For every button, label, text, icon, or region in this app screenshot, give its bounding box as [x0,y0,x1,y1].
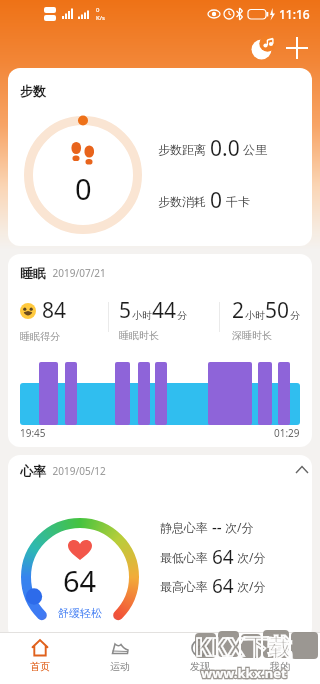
staticText: 小时 [132,309,152,322]
staticText: 44 [152,296,177,325]
staticText: 5 [119,296,132,325]
staticText: 0.0 [210,134,240,163]
staticText: 次/分 [234,549,266,565]
staticText: 睡眠时长 [119,329,159,342]
button[interactable]: 首页 [0,633,80,684]
staticText: 64 [63,561,97,600]
staticText: www.kkx.net [201,664,287,682]
staticText: 0 [210,186,223,215]
staticText: 84 [42,296,67,325]
staticText: 0 [75,169,92,208]
button[interactable]: 心率 [8,455,312,640]
staticText: 50 [265,296,290,325]
staticText: 公里 [240,141,268,157]
staticText: 0 [96,6,100,14]
staticText: 01:29 [274,426,300,440]
staticText: 次/分 [222,519,254,535]
staticText: www.kkx.net [201,664,287,682]
staticText: 64 [212,544,234,570]
staticText: 2019/07/21 [50,266,106,280]
button[interactable]: 发现 [160,633,240,684]
staticText: 分 [290,309,300,322]
staticText: 我的 [270,660,290,673]
staticText: 最高心率 [160,578,212,594]
staticText: 静息心率 [160,519,212,535]
staticText: KKX下载 [195,630,293,663]
staticText: 11:16 [279,6,310,22]
staticText: 2 [232,296,245,325]
staticText: 舒缓轻松 [58,606,102,620]
staticText: 睡眠得分 [20,330,60,343]
staticText: 发现 [190,660,210,673]
staticText: 运动 [110,660,130,673]
staticText: 首页 [30,660,50,673]
staticText: 次/分 [234,578,266,594]
staticText: 分 [177,309,187,322]
button[interactable] [248,33,278,63]
button[interactable] [282,33,312,63]
button[interactable]: 运动 [80,633,160,684]
staticText: 最低心率 [160,549,212,565]
staticText: 心率 [20,463,46,479]
staticText: 步数消耗 [158,193,210,209]
staticText: 2019/05/12 [50,464,106,478]
staticText: 深睡时长 [232,329,272,342]
staticText: -- [212,517,222,537]
staticText: 睡眠 [20,265,46,281]
button[interactable]: 睡眠 [8,254,312,447]
staticText: 64 [212,573,234,599]
staticText: K/s [96,14,105,22]
staticText: 千卡 [223,193,251,209]
staticText: 19:45 [20,426,46,440]
button[interactable]: 我的 [240,633,320,684]
staticText: 步数 [20,83,46,99]
staticText: 步数距离 [158,141,210,157]
button[interactable]: 步数 [8,68,312,246]
staticText: 小时 [245,309,265,322]
